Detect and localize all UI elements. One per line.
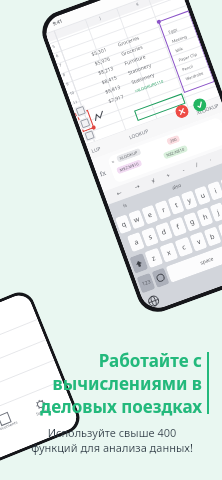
staticText: i bbox=[213, 186, 218, 196]
staticText: r bbox=[160, 205, 167, 215]
button[interactable]: w bbox=[128, 209, 145, 229]
staticText: w bbox=[132, 214, 141, 226]
button[interactable]: g bbox=[183, 212, 200, 232]
staticText: Meeting bbox=[171, 34, 188, 44]
button[interactable]: is bbox=[122, 201, 128, 209]
button[interactable]: ← bbox=[115, 188, 123, 197]
button[interactable]: h bbox=[196, 207, 213, 227]
button[interactable]: → bbox=[133, 182, 141, 190]
button[interactable]: Emoji bbox=[152, 268, 170, 288]
button[interactable]: q bbox=[115, 214, 132, 234]
staticText: вычислениями в bbox=[6, 372, 202, 395]
button[interactable]: · bbox=[208, 156, 213, 164]
button[interactable]: space bbox=[166, 239, 222, 283]
staticText: x bbox=[165, 247, 173, 258]
staticText: 9:41 bbox=[52, 18, 63, 28]
button[interactable]: d bbox=[155, 222, 173, 242]
staticText: z bbox=[150, 253, 158, 264]
button[interactable]: LUP bbox=[91, 145, 102, 155]
button[interactable]: LOOKUP bbox=[128, 127, 150, 141]
staticText: Используйте свыше 400 bbox=[12, 425, 212, 440]
button[interactable]: Insert tool bbox=[83, 128, 97, 142]
staticText: 10 bbox=[69, 90, 75, 96]
button[interactable]: n bbox=[218, 221, 222, 242]
button[interactable]: Cancel formula bbox=[174, 103, 190, 120]
staticText: q bbox=[120, 219, 128, 230]
staticText: =XLOOKUP(I110 bbox=[134, 78, 165, 94]
staticText: Pencil bbox=[181, 63, 194, 72]
staticText: Stationery bbox=[130, 71, 156, 86]
button[interactable]: Numbers bbox=[136, 273, 155, 293]
staticText: $7,917 bbox=[108, 93, 125, 105]
staticText: Stationery bbox=[127, 62, 153, 77]
button[interactable]: x bbox=[159, 242, 178, 263]
button[interactable]: 9:41 bbox=[41, 0, 222, 313]
staticText: K bbox=[135, 1, 140, 7]
button[interactable]: 24 May bbox=[0, 291, 80, 462]
staticText: $5,976 bbox=[94, 55, 111, 68]
staticText: N$2:N$10 bbox=[166, 146, 185, 158]
staticText: XLOOKUP bbox=[119, 150, 139, 161]
staticText: 5 bbox=[52, 43, 56, 49]
staticText: деловых поездках bbox=[6, 395, 202, 418]
staticText: 9 bbox=[65, 81, 70, 87]
button[interactable]: v bbox=[189, 231, 207, 252]
button[interactable]: e bbox=[141, 205, 158, 225]
staticText: Furniture bbox=[124, 53, 147, 67]
button[interactable]: Shift bbox=[129, 253, 148, 274]
staticText: Settings bbox=[35, 406, 52, 417]
button[interactable]: y bbox=[181, 190, 198, 210]
button[interactable]: M$2:M$10 bbox=[119, 161, 139, 172]
staticText: u bbox=[199, 190, 207, 201]
button[interactable]: a bbox=[127, 232, 145, 252]
staticText: 8 bbox=[62, 72, 66, 77]
staticText: $8,415 bbox=[101, 74, 118, 86]
button[interactable]: also bbox=[171, 182, 183, 192]
button[interactable]: u bbox=[194, 185, 211, 205]
staticText: a bbox=[133, 237, 140, 248]
button[interactable]: Accept formula bbox=[191, 97, 208, 113]
button[interactable]: b bbox=[204, 226, 222, 247]
staticText: 123 bbox=[141, 278, 152, 288]
staticText: Wardrobe bbox=[185, 70, 204, 82]
staticText: J bbox=[99, 15, 102, 20]
staticText: Paper Clip bbox=[178, 51, 198, 63]
button[interactable]: j bbox=[209, 202, 222, 222]
button[interactable]: r bbox=[154, 200, 171, 220]
staticText: Milk bbox=[175, 46, 184, 53]
button[interactable]: f bbox=[169, 216, 187, 237]
button[interactable]: + bbox=[165, 171, 172, 180]
staticText: Eggs bbox=[168, 26, 179, 35]
staticText: $9,813 bbox=[104, 84, 122, 96]
staticText: space bbox=[199, 255, 215, 267]
staticText: $5,301 bbox=[90, 46, 108, 58]
staticText: e bbox=[146, 210, 154, 220]
staticText: 6 bbox=[55, 53, 60, 58]
button[interactable]: ≠ bbox=[150, 176, 157, 185]
button[interactable]: c bbox=[174, 236, 193, 257]
button[interactable]: 390 bbox=[169, 137, 177, 144]
button[interactable]: i bbox=[207, 181, 222, 201]
staticText: f bbox=[175, 222, 181, 232]
staticText: Groceries bbox=[117, 34, 141, 49]
staticText: = bbox=[110, 158, 116, 166]
button[interactable]: s bbox=[141, 227, 159, 247]
staticText: j bbox=[216, 208, 221, 218]
button[interactable]: Settings bbox=[31, 397, 52, 417]
button[interactable]: N$2:N$10 bbox=[166, 146, 185, 158]
button[interactable]: / bbox=[194, 161, 200, 169]
staticText: h bbox=[201, 212, 210, 223]
button[interactable]: XLOOKUP bbox=[119, 150, 139, 161]
button[interactable]: Insert tool bbox=[74, 104, 88, 118]
button[interactable]: XLOOKUP bbox=[196, 102, 221, 117]
button[interactable]: - bbox=[181, 166, 186, 174]
button[interactable]: o bbox=[220, 176, 222, 196]
button[interactable]: z bbox=[144, 247, 163, 268]
button[interactable]: = bbox=[107, 116, 222, 184]
staticText: 7 bbox=[58, 62, 63, 68]
button[interactable]: Change language bbox=[147, 295, 160, 307]
button[interactable]: Insert tool bbox=[78, 116, 92, 130]
button[interactable]: t bbox=[168, 195, 185, 215]
button[interactable]: Documents bbox=[0, 410, 18, 432]
staticText: функций для анализа данных! bbox=[12, 440, 212, 455]
